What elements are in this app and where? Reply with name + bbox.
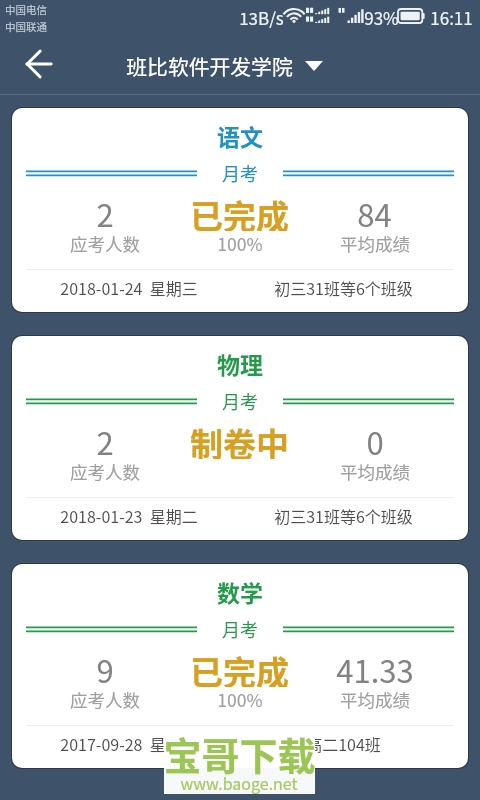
staticText: 初三31班等6个班级 [274, 504, 413, 527]
staticText: 0 [366, 419, 384, 459]
button[interactable]: Back [14, 42, 62, 90]
staticText: 宝哥下载 [163, 726, 316, 781]
staticText: 班比软件开发学院 [126, 51, 293, 81]
staticText: 月考 [222, 388, 258, 414]
staticText: 9 [96, 647, 114, 687]
staticText: 84 [357, 191, 392, 231]
staticText: 月考 [222, 160, 258, 186]
staticText: 2017-09-28 星期四 [60, 732, 198, 755]
button[interactable]: 数学 [12, 564, 468, 768]
staticText: 中国电信 [5, 2, 47, 17]
staticText: 100% [217, 687, 263, 711]
staticText: 41.33 [336, 647, 414, 687]
staticText: 已完成 [190, 647, 289, 687]
staticText: 2 [96, 191, 114, 231]
staticText: 2018-01-23 星期二 [60, 504, 198, 527]
staticText: 应考人数 [70, 687, 140, 711]
staticText: 语文 [217, 119, 263, 152]
staticText: 制卷中 [190, 419, 289, 459]
staticText: 月考 [222, 616, 258, 642]
staticText: 平均成绩 [340, 687, 410, 711]
staticText: 13B/s [239, 5, 284, 30]
staticText: 物理 [217, 347, 263, 380]
staticText: 2 [96, 419, 114, 459]
staticText: 平均成绩 [340, 231, 410, 255]
staticText: 应考人数 [70, 231, 140, 255]
button[interactable]: 语文 [12, 108, 468, 312]
staticText: 中国联通 [5, 19, 47, 34]
staticText: 初三31班等6个班级 [274, 276, 413, 299]
staticText: 平均成绩 [340, 459, 410, 483]
staticText: 应考人数 [70, 459, 140, 483]
staticText: www.baoge.net [180, 771, 298, 794]
staticText: 16:11 [430, 5, 473, 30]
staticText: 2018-01-24 星期三 [60, 276, 198, 299]
button[interactable]: 班比软件开发学院 [126, 51, 323, 81]
staticText: 高二104班 [306, 732, 381, 755]
staticText: 已完成 [190, 191, 289, 231]
staticText: 100% [217, 231, 263, 255]
button[interactable]: 物理 [12, 336, 468, 540]
staticText: 93% [364, 5, 399, 30]
staticText: 数学 [217, 575, 263, 608]
